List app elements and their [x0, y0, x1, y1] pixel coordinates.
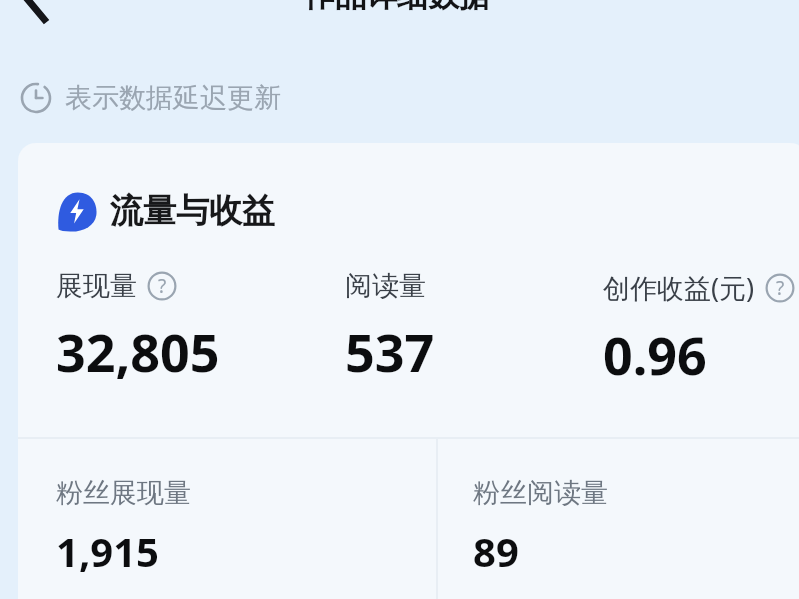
staticText: 创作收益(元): [603, 269, 755, 306]
staticText: 展现量: [56, 269, 137, 303]
button[interactable]: 粉丝阅读量: [473, 476, 608, 578]
staticText: ?: [158, 273, 167, 299]
staticText: 流量与收益: [110, 190, 275, 232]
button[interactable]: 展现量说明: [147, 271, 177, 301]
staticText: 阅读量: [345, 269, 426, 303]
staticText: 作品详细数据: [304, 0, 490, 15]
staticText: 1,915: [56, 524, 159, 578]
button[interactable]: Back: [4, 0, 60, 34]
button[interactable]: 粉丝展现量: [56, 476, 191, 578]
staticText: 粉丝展现量: [56, 476, 191, 510]
staticText: 粉丝阅读量: [473, 476, 608, 510]
staticText: 0.96: [603, 319, 707, 390]
staticText: ?: [776, 275, 785, 301]
button[interactable]: 创作收益说明: [765, 273, 795, 303]
staticText: 表示数据延迟更新: [65, 81, 281, 115]
staticText: 89: [473, 524, 519, 578]
staticText: 537: [345, 316, 435, 387]
staticText: 32,805: [56, 316, 220, 387]
